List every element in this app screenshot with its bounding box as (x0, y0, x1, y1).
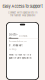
staticText: Connect with specialists in (8, 11, 37, 14)
staticText: Cardiology (9, 48, 17, 50)
staticText: Doctors (9, 33, 18, 39)
staticText: What to look for in a (9, 53, 31, 56)
staticText: Dr. Amelia Hart (9, 44, 23, 47)
staticText: quality care specialist (9, 56, 32, 59)
staticText: Clinics (19, 34, 27, 38)
button[interactable]: Doctors (9, 33, 18, 39)
staticText: Easy Access to Support (2, 4, 42, 9)
staticText: the fastest way possible (10, 14, 35, 17)
staticText: Recommended near you (9, 40, 27, 42)
button[interactable]: Clinics (18, 34, 28, 38)
